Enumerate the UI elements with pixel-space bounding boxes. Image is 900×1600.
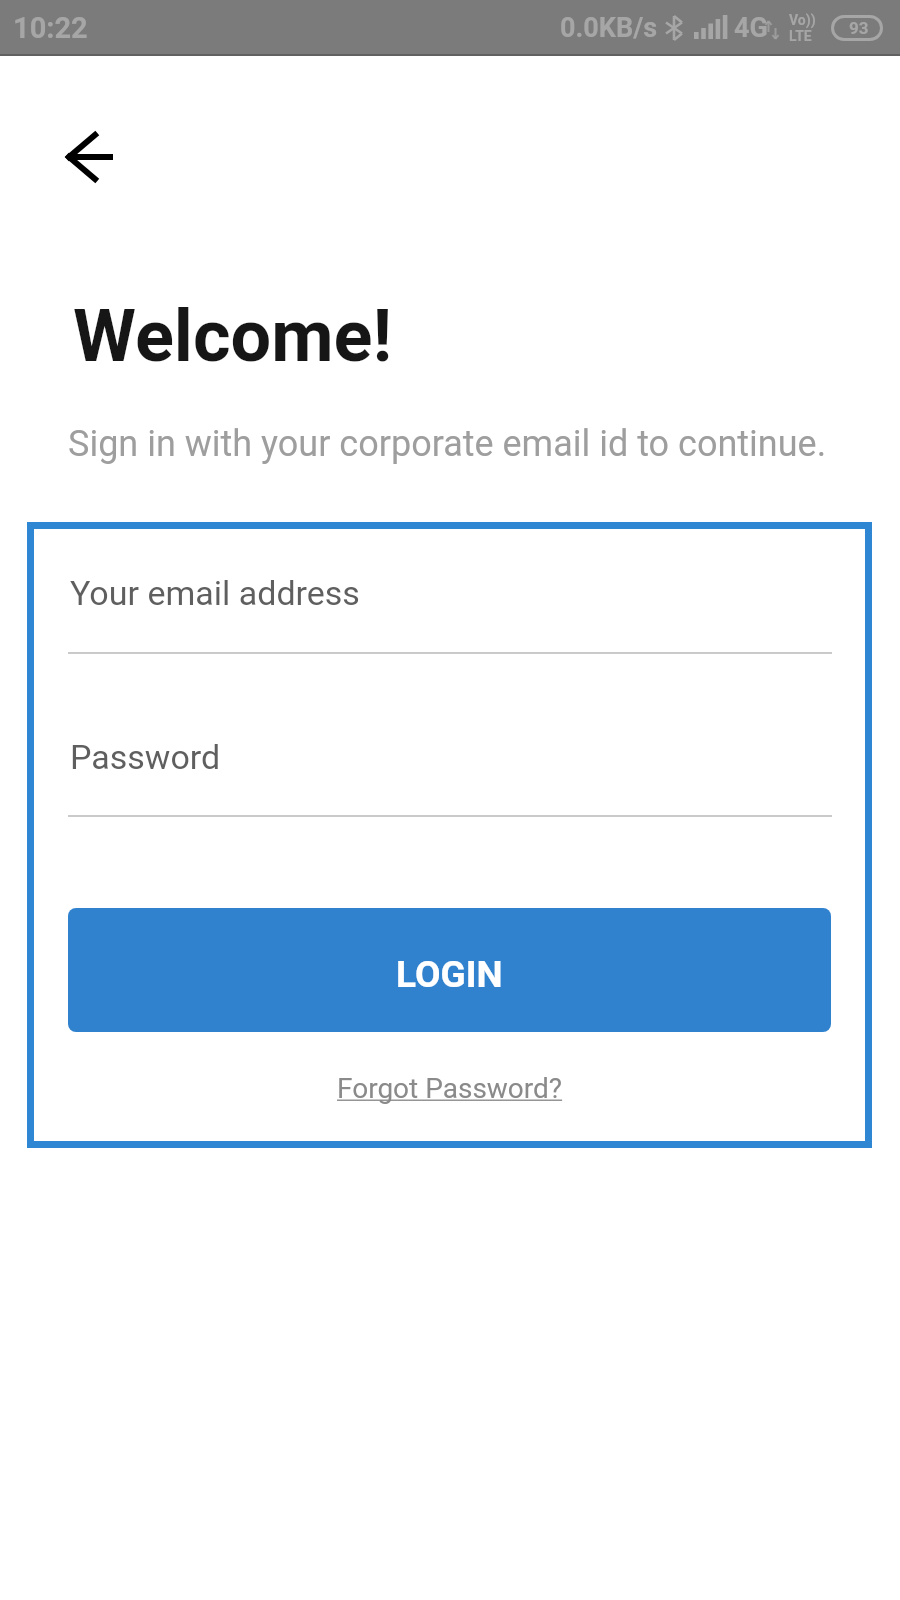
staticText: LTE bbox=[789, 28, 812, 44]
staticText: Your email address bbox=[70, 573, 360, 613]
staticText: 0.0KB/s bbox=[560, 12, 658, 44]
button[interactable] bbox=[68, 542, 832, 654]
staticText: 10:22 bbox=[13, 11, 88, 45]
staticText: 93 bbox=[849, 18, 869, 38]
button[interactable] bbox=[60, 125, 124, 189]
staticText: 4G bbox=[734, 12, 768, 44]
staticText: Welcome! bbox=[73, 294, 393, 378]
button[interactable]: LOGIN bbox=[68, 908, 831, 1032]
staticText: Password bbox=[70, 737, 221, 777]
button[interactable] bbox=[68, 705, 832, 817]
staticText: Vo)) bbox=[789, 12, 816, 28]
button[interactable]: Forgot Password? bbox=[337, 1072, 563, 1105]
staticText: Sign in with your corporate email id to … bbox=[68, 423, 827, 465]
staticText: LOGIN bbox=[396, 953, 503, 996]
